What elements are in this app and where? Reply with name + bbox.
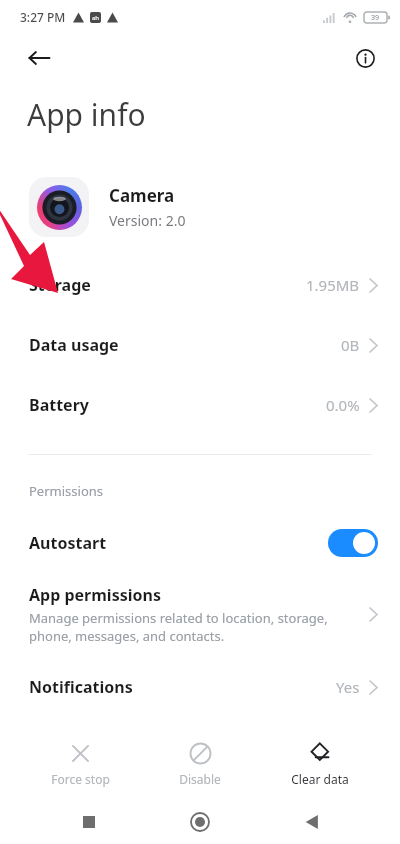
button[interactable]: Recent apps bbox=[66, 799, 112, 844]
staticText: Camera bbox=[109, 184, 175, 207]
button[interactable]: Data usage bbox=[0, 315, 400, 375]
staticText: 1.95MB bbox=[306, 275, 360, 295]
staticText: Storage bbox=[29, 274, 91, 296]
staticText: Data usage bbox=[29, 334, 119, 356]
staticText: Permissions bbox=[29, 482, 104, 500]
button[interactable]: App permissions bbox=[0, 580, 400, 649]
staticText: Manage permissions related to location, … bbox=[29, 609, 328, 645]
button[interactable]: Clear data bbox=[276, 739, 364, 790]
staticText: Autostart bbox=[29, 532, 107, 554]
staticText: App info bbox=[27, 94, 146, 135]
button[interactable]: Back bbox=[18, 37, 60, 79]
button[interactable]: Storage bbox=[0, 255, 400, 315]
staticText: ah bbox=[92, 14, 100, 22]
button[interactable]: Force stop bbox=[36, 739, 124, 790]
button[interactable]: Back bbox=[289, 799, 335, 844]
staticText: Version: 2.0 bbox=[109, 211, 186, 230]
button[interactable]: App details info bbox=[345, 38, 385, 78]
staticText: Force stop bbox=[51, 771, 110, 787]
staticText: 0.0% bbox=[326, 395, 360, 415]
button[interactable]: Autostart toggle, on bbox=[328, 529, 378, 557]
staticText: Clear data bbox=[291, 771, 349, 787]
button[interactable]: Home bbox=[177, 799, 223, 844]
staticText: 39 bbox=[371, 13, 380, 23]
button[interactable]: Autostart bbox=[0, 520, 400, 566]
staticText: Notifications bbox=[29, 676, 133, 698]
staticText: 0B bbox=[341, 335, 360, 355]
button[interactable]: Battery bbox=[0, 375, 400, 435]
button[interactable]: Disable bbox=[156, 739, 244, 790]
staticText: Disable bbox=[179, 771, 221, 787]
staticText: Battery bbox=[29, 394, 89, 416]
staticText: App permissions bbox=[29, 584, 161, 606]
button[interactable]: Notifications bbox=[0, 657, 400, 717]
staticText: 3:27 PM bbox=[20, 9, 66, 25]
staticText: Yes bbox=[336, 677, 360, 697]
